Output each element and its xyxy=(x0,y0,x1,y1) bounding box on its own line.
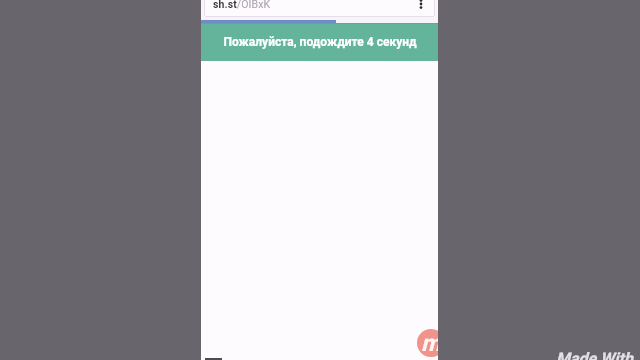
staticText: m xyxy=(421,330,438,357)
button[interactable]: More options xyxy=(415,0,427,10)
staticText: Made With xyxy=(556,349,633,360)
button[interactable]: sh.st/OIBxK xyxy=(204,0,435,17)
button[interactable]: Пожалуйста, подождите 4 секунд xyxy=(201,24,438,61)
button[interactable] xyxy=(201,61,438,360)
staticText: Пожалуйста, подождите 4 секунд xyxy=(223,35,417,49)
staticText: sh.st/OIBxK xyxy=(213,0,271,10)
